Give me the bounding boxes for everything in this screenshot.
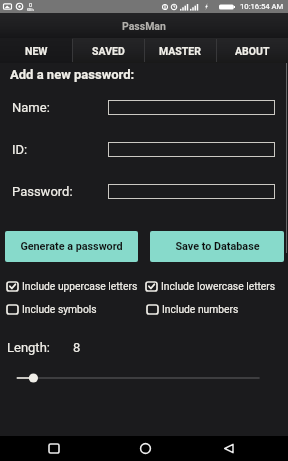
staticText: Password:: [12, 184, 73, 199]
staticText: 8: [73, 340, 81, 355]
staticText: 10:16:54 AM: [240, 2, 284, 11]
button[interactable]: Include lowercase letters: [145, 280, 276, 292]
staticText: Name:: [12, 100, 50, 115]
staticText: ID:: [12, 142, 28, 157]
button[interactable]: Save to Database: [150, 231, 284, 262]
button[interactable]: [0, 370, 288, 386]
button[interactable]: [108, 184, 275, 199]
button[interactable]: Include uppercase letters: [6, 280, 138, 292]
button[interactable]: NEW: [0, 38, 72, 63]
staticText: Generate a password: [20, 240, 123, 253]
button[interactable]: Include numbers: [146, 303, 239, 315]
button[interactable]: MASTER: [144, 38, 216, 63]
staticText: Include symbols: [22, 303, 97, 315]
staticText: Include uppercase letters: [22, 280, 138, 292]
staticText: Length:: [7, 340, 50, 355]
button[interactable]: Recent apps: [38, 436, 70, 461]
button[interactable]: Generate a password: [5, 231, 138, 262]
button[interactable]: SAVED: [72, 38, 144, 63]
staticText: NEW: [25, 45, 48, 57]
staticText: Save to Database: [175, 240, 260, 253]
button[interactable]: Home: [129, 436, 161, 461]
staticText: Include numbers: [162, 303, 239, 315]
button[interactable]: [108, 100, 275, 115]
button[interactable]: [108, 142, 275, 157]
staticText: PassMan: [122, 20, 166, 32]
staticText: KB/s: [27, 8, 34, 12]
button[interactable]: Include symbols: [6, 303, 97, 315]
staticText: SAVED: [92, 45, 125, 57]
staticText: Include lowercase letters: [161, 280, 276, 292]
staticText: ABOUT: [235, 45, 270, 57]
button[interactable]: ABOUT: [216, 38, 288, 63]
staticText: MASTER: [159, 45, 201, 57]
staticText: Add a new password:: [10, 67, 135, 82]
button[interactable]: Back: [213, 436, 245, 461]
staticText: 0: [29, 2, 33, 8]
